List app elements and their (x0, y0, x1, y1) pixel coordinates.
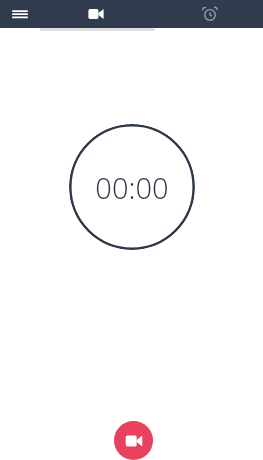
button[interactable]: 00:00 (69, 124, 195, 250)
button[interactable]: Start recording (114, 421, 153, 460)
button[interactable]: Menu (6, 0, 34, 28)
staticText: 00:00 (95, 168, 169, 207)
button[interactable]: Alarm (196, 0, 224, 28)
button[interactable]: Recorder (82, 0, 110, 28)
